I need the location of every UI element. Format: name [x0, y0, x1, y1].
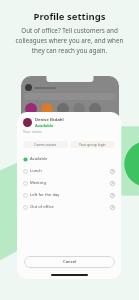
- other: Set time for Meeting: [110, 181, 115, 186]
- button[interactable]: Left for the day: [17, 189, 121, 201]
- staticText: Communicate: [34, 142, 57, 147]
- button[interactable]: Cancel: [24, 256, 115, 268]
- staticText: Your status: [23, 129, 42, 134]
- other: Set time for Lunch: [110, 169, 115, 174]
- other: Set time for Left for the day: [110, 193, 115, 198]
- staticText: Profile settings: [0, 10, 139, 23]
- staticText: Out of office: [30, 204, 54, 210]
- button[interactable]: Out of office: [17, 201, 121, 213]
- staticText: Meeting: [30, 180, 46, 186]
- staticText: Available: [35, 123, 54, 127]
- button[interactable]: Communicate: [23, 141, 68, 148]
- staticText: Lunch: [30, 168, 42, 174]
- button[interactable]: Lunch: [17, 165, 121, 177]
- button[interactable]: Meeting: [17, 177, 121, 189]
- button[interactable]: Your group login: [70, 141, 115, 148]
- staticText: Left for the day: [30, 192, 60, 198]
- staticText: Out of office? Tell customers and collea…: [0, 26, 139, 55]
- staticText: Available: [30, 156, 48, 162]
- staticText: Denise Ekdahl: [35, 117, 64, 123]
- staticText: Cancel: [63, 259, 77, 265]
- button[interactable]: Available: [17, 153, 121, 165]
- staticText: Your group login: [79, 142, 106, 147]
- other: Set time for Out of office: [110, 205, 115, 210]
